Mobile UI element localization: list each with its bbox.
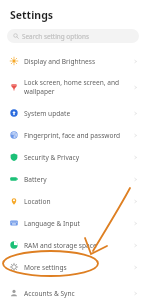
staticText: Security & Privacy <box>24 153 133 162</box>
button[interactable]: Lock screen, home screen, and wallpaper <box>0 72 146 102</box>
button[interactable]: Display and Brightness <box>0 50 146 72</box>
staticText: Location <box>24 197 133 206</box>
staticText: More settings <box>24 263 133 272</box>
staticText: RAM and storage space <box>24 241 133 250</box>
staticText: System update <box>24 109 133 118</box>
button[interactable]: System update <box>0 102 146 124</box>
staticText: Accounts & Sync <box>24 289 133 298</box>
staticText: Search setting options <box>22 32 89 41</box>
button[interactable]: Search setting options <box>7 29 139 43</box>
other: Annotation <box>0 0 146 300</box>
staticText: Battery <box>24 175 133 184</box>
button[interactable]: Accounts & Sync <box>0 286 146 300</box>
button[interactable]: Security & Privacy <box>0 146 146 168</box>
staticText: Fingerprint, face and password <box>24 131 133 140</box>
button[interactable]: Battery <box>0 168 146 190</box>
staticText: Settings <box>10 8 54 22</box>
staticText: Display and Brightness <box>24 57 133 66</box>
button[interactable]: RAM and storage space <box>0 234 146 256</box>
button[interactable]: Fingerprint, face and password <box>0 124 146 146</box>
button[interactable]: Language & Input <box>0 212 146 234</box>
staticText: Language & Input <box>24 219 133 228</box>
staticText: Lock screen, home screen, and wallpaper <box>24 78 133 96</box>
button[interactable]: Location <box>0 190 146 212</box>
button[interactable]: More settings <box>0 256 146 278</box>
